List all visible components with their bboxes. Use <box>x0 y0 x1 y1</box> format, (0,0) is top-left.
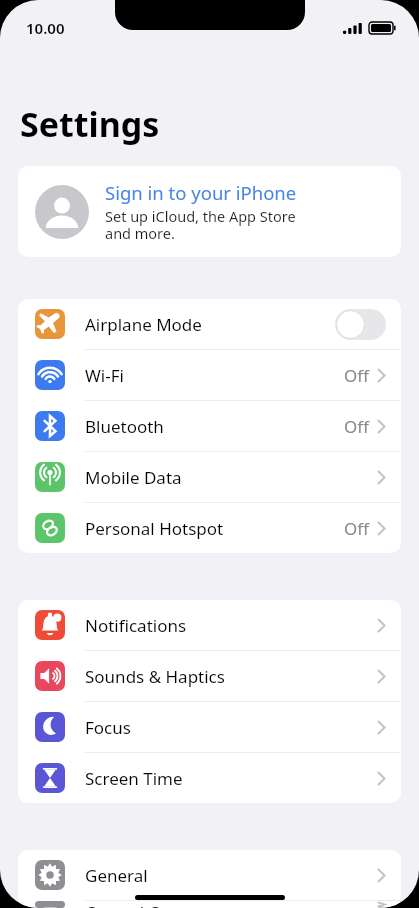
staticText: Sounds & Haptics <box>85 665 377 688</box>
staticText: Notifications <box>85 614 377 637</box>
staticText: Bluetooth <box>85 415 344 438</box>
staticText: Settings <box>20 101 160 147</box>
staticText: General <box>85 864 377 887</box>
button[interactable]: Control Centre <box>18 901 401 908</box>
staticText: Personal Hotspot <box>85 517 344 540</box>
staticText: Focus <box>85 716 377 739</box>
staticText: Off <box>344 517 369 540</box>
staticText: Mobile Data <box>85 466 377 489</box>
button[interactable]: General <box>18 850 401 900</box>
button[interactable]: Screen Time <box>18 753 401 803</box>
staticText: Wi-Fi <box>85 364 344 387</box>
staticText: Screen Time <box>85 767 377 790</box>
button[interactable]: Airplane Mode <box>18 299 401 349</box>
button[interactable]: Personal Hotspot <box>18 503 401 553</box>
button[interactable]: Bluetooth <box>18 401 401 451</box>
button[interactable]: Notifications <box>18 600 401 650</box>
staticText: Airplane Mode <box>85 313 335 336</box>
staticText: Sign in to your iPhone <box>105 180 297 205</box>
button[interactable]: Sign in to your iPhone <box>18 166 401 257</box>
button[interactable]: Wi-Fi <box>18 350 401 400</box>
button[interactable]: Sounds & Haptics <box>18 651 401 701</box>
button[interactable]: Mobile Data <box>18 452 401 502</box>
staticText: 10.00 <box>26 18 65 38</box>
staticText: Off <box>344 415 369 438</box>
staticText: Off <box>344 364 369 387</box>
staticText: Set up iCloud, the App Store and more. <box>105 206 296 243</box>
button[interactable]: Focus <box>18 702 401 752</box>
staticText: Control Centre <box>85 901 377 908</box>
